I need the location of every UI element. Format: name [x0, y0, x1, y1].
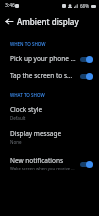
staticText: 3:46: [5, 2, 15, 9]
staticText: WHEN TO SHOW: [10, 41, 46, 47]
button[interactable]: Back: [2, 14, 16, 28]
staticText: Wake screen when you receive notificatio…: [10, 166, 76, 172]
staticText: Default: [10, 115, 26, 121]
staticText: New notifications: [10, 156, 64, 165]
staticText: Display message: [10, 129, 62, 138]
button[interactable]: Pick up your phone to show: [0, 50, 99, 67]
button[interactable]: Display message: [0, 125, 99, 149]
button[interactable]: Clock style: [0, 101, 99, 125]
staticText: Pick up your phone to show: [10, 54, 76, 63]
button[interactable]: New notifications: [0, 152, 99, 176]
staticText: None: [10, 139, 22, 145]
staticText: Clock style: [10, 105, 43, 114]
staticText: WHAT TO SHOW: [10, 92, 45, 98]
staticText: 68%: [80, 3, 89, 9]
staticText: Ambient display: [17, 16, 79, 27]
button[interactable]: Tap the screen to show: [0, 67, 99, 84]
staticText: Tap the screen to show: [10, 71, 76, 80]
